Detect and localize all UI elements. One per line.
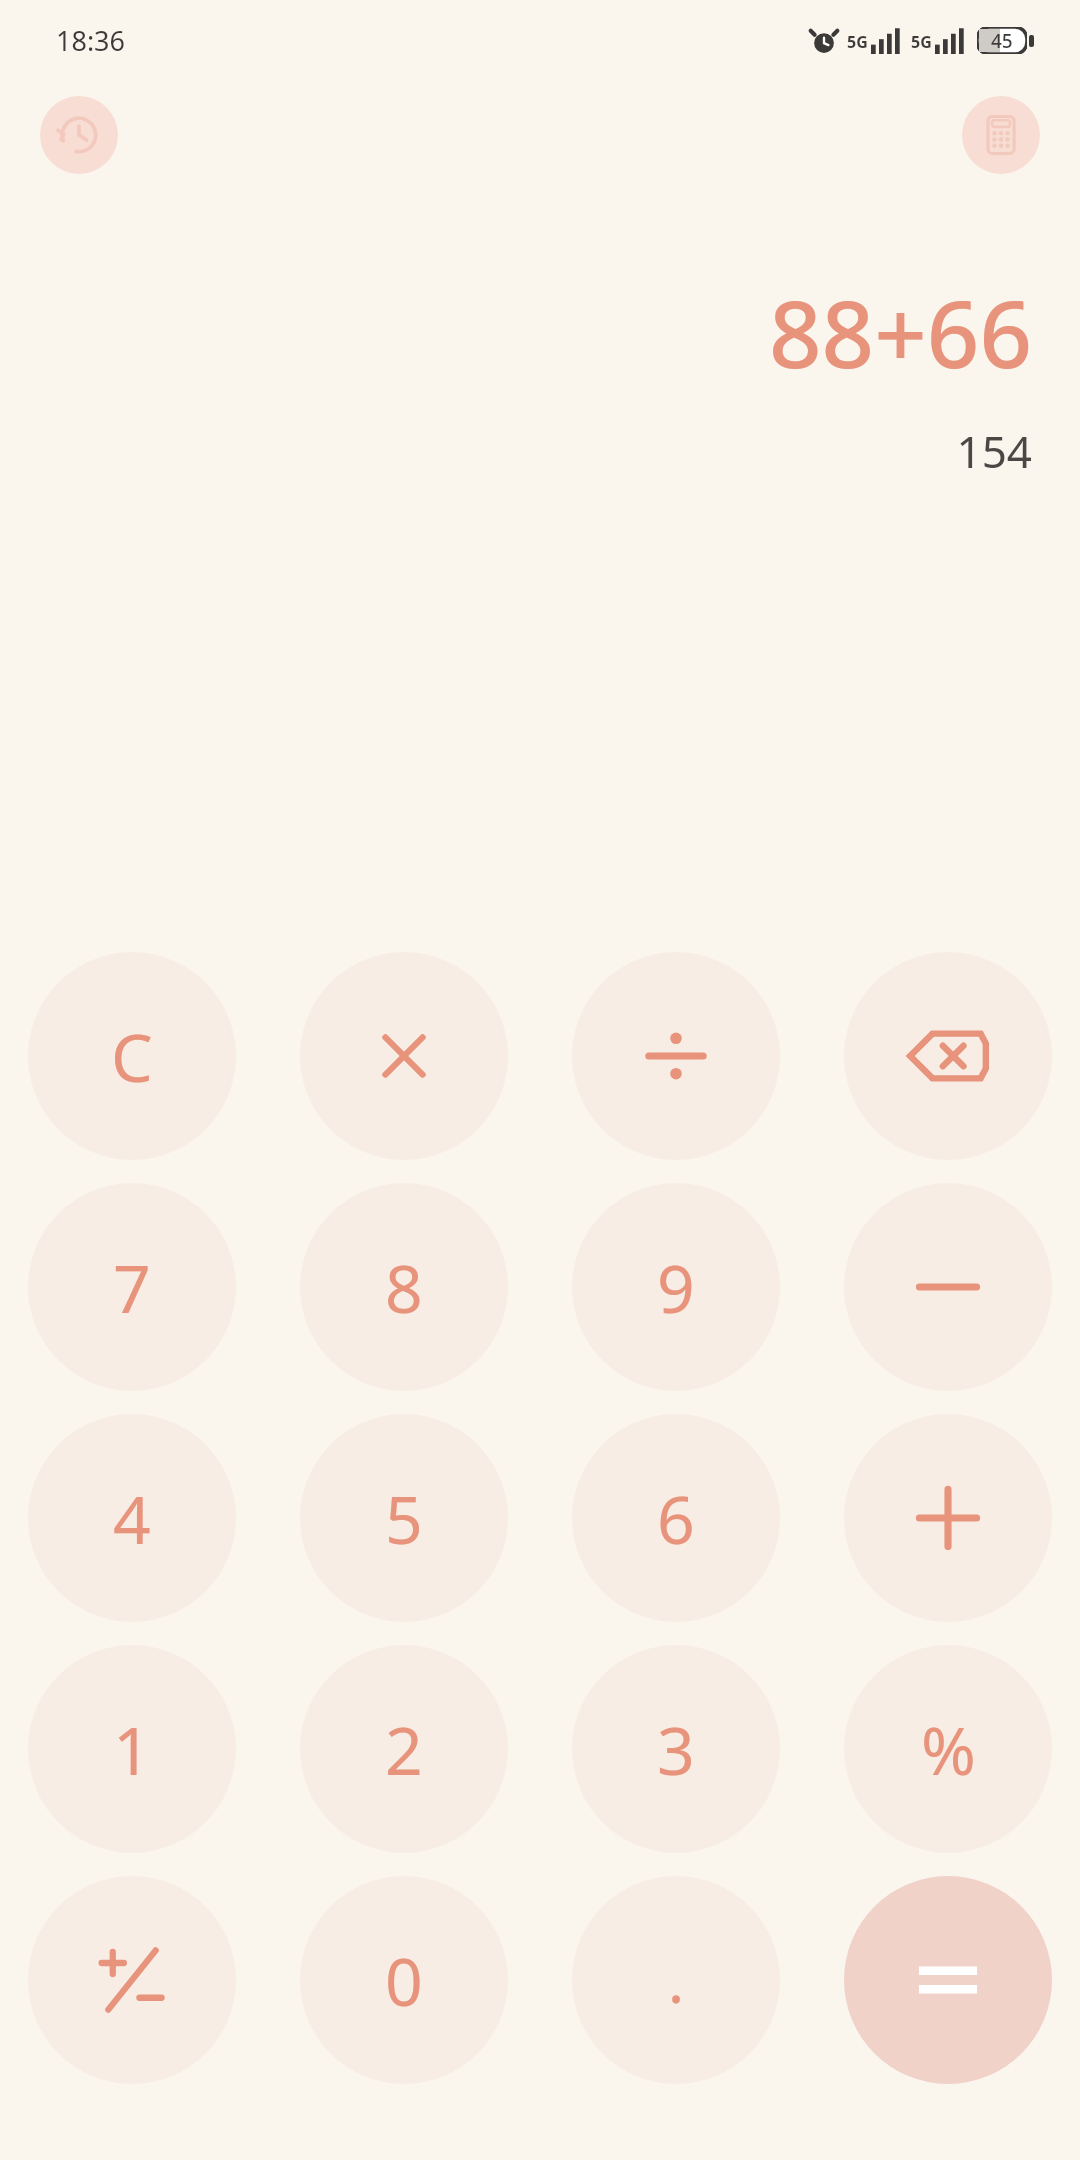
staticText: 18:36 (56, 22, 126, 59)
button[interactable]: 1 (28, 1645, 236, 1853)
button[interactable]: 4 (28, 1414, 236, 1622)
staticText: 6 (657, 1473, 695, 1563)
button[interactable]: 2 (300, 1645, 508, 1853)
button[interactable]: Multiply (300, 952, 508, 1160)
staticText: 88+66 (768, 270, 1032, 395)
staticText: . (668, 1939, 685, 2021)
button[interactable]: 5 (300, 1414, 508, 1622)
staticText: 3 (657, 1704, 695, 1794)
button[interactable]: Backspace (844, 952, 1052, 1160)
button[interactable]: Minus (844, 1183, 1052, 1391)
button[interactable]: 6 (572, 1414, 780, 1622)
staticText: 8 (385, 1242, 423, 1332)
staticText: 7 (113, 1242, 151, 1332)
button[interactable]: Calculator mode (962, 96, 1040, 174)
button[interactable]: Plus (844, 1414, 1052, 1622)
staticText: 5G (847, 31, 868, 53)
staticText: 45 (991, 28, 1013, 54)
button[interactable]: 9 (572, 1183, 780, 1391)
button[interactable]: 7 (28, 1183, 236, 1391)
staticText: 4 (113, 1473, 151, 1563)
button[interactable]: % (844, 1645, 1052, 1853)
staticText: 9 (657, 1242, 695, 1332)
button[interactable]: Divide (572, 952, 780, 1160)
staticText: C (111, 1011, 153, 1101)
staticText: 1 (113, 1704, 151, 1794)
button[interactable]: 8 (300, 1183, 508, 1391)
staticText: 0 (385, 1935, 423, 2025)
button[interactable]: 3 (572, 1645, 780, 1853)
button[interactable]: 0 (300, 1876, 508, 2084)
staticText: 5 (385, 1473, 423, 1563)
staticText: 5G (911, 31, 932, 53)
button[interactable]: Toggle sign (28, 1876, 236, 2084)
staticText: 2 (385, 1704, 423, 1794)
button[interactable]: . (572, 1876, 780, 2084)
staticText: % (921, 1704, 976, 1794)
staticText: 154 (956, 421, 1032, 481)
button[interactable]: C (28, 952, 236, 1160)
button[interactable]: History (40, 96, 118, 174)
button[interactable]: Equals (844, 1876, 1052, 2084)
